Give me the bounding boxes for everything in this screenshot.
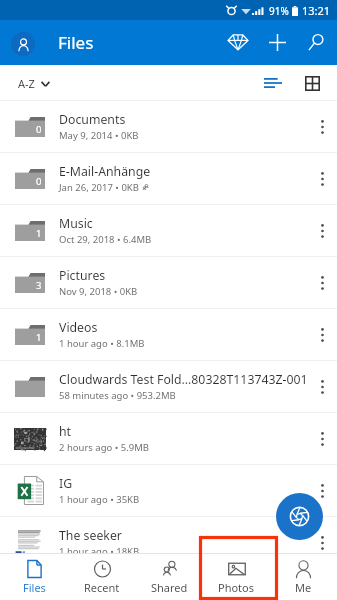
staticText: Cloudwards Test Fold…80328T113743Z-001 [59, 371, 308, 388]
button[interactable]: More options [309, 153, 337, 204]
button[interactable]: Me [270, 554, 337, 600]
button[interactable]: 3 [0, 257, 337, 308]
staticText: 1 [36, 331, 42, 344]
staticText: 1 [36, 227, 42, 240]
button[interactable]: IG [0, 465, 337, 516]
button[interactable]: Search [296, 23, 335, 62]
staticText: 1 hour ago • 18KB [59, 545, 140, 558]
staticText: 58 minutes ago • 953.2MB [59, 389, 176, 402]
staticText: Nov 9, 2018 • 0KB [59, 285, 138, 298]
staticText: 0 [36, 175, 42, 188]
staticText: The seeker [59, 527, 122, 544]
button[interactable]: A-Z [18, 76, 50, 91]
button[interactable]: Account [11, 32, 35, 56]
staticText: IG [59, 475, 73, 492]
staticText: 1 hour ago • 35KB [59, 493, 140, 506]
staticText: May 9, 2014 • 0KB [59, 129, 139, 142]
staticText: 91% [269, 4, 289, 18]
button[interactable]: Grid view [294, 65, 330, 101]
staticText: Pictures [59, 267, 106, 284]
button[interactable]: More options [309, 309, 337, 360]
staticText: A-Z [18, 76, 35, 91]
button[interactable]: Add [258, 23, 297, 62]
button[interactable]: More options [309, 257, 337, 308]
button[interactable]: Shared [136, 554, 203, 600]
staticText: 3 [36, 279, 42, 292]
staticText: Videos [59, 319, 98, 336]
button[interactable]: Premium [218, 23, 257, 62]
staticText: Shared [151, 580, 188, 595]
button[interactable]: More options [309, 101, 337, 152]
button[interactable]: 1 [0, 309, 337, 360]
button[interactable]: Cloudwards Test Fold…80328T113743Z-001 [0, 361, 337, 412]
staticText: Documents [59, 111, 126, 128]
button[interactable]: More options [309, 205, 337, 256]
button[interactable]: ht [0, 413, 337, 464]
button[interactable]: The seeker [0, 517, 337, 568]
staticText: Music [59, 215, 93, 232]
staticText: Files [23, 580, 46, 595]
button[interactable]: Scan document [276, 493, 323, 540]
button[interactable]: 0 [0, 101, 337, 152]
staticText: Recent [84, 580, 120, 595]
staticText: ht [59, 423, 72, 440]
button[interactable]: Photos [203, 554, 270, 600]
staticText: Oct 29, 2018 • 6.4MB [59, 233, 152, 246]
button[interactable]: 0 [0, 153, 337, 204]
button[interactable]: List view [255, 65, 291, 101]
staticText: E-Mail-Anhänge [59, 163, 151, 180]
staticText: Jan 26, 2017 • 0KB [59, 181, 139, 194]
button[interactable]: 1 [0, 205, 337, 256]
staticText: 0 [36, 123, 42, 136]
staticText: 2 hours ago • 5.9MB [59, 441, 149, 454]
staticText: Me [295, 580, 312, 595]
staticText: 13:21 [302, 3, 331, 18]
staticText: 1 hour ago • 8.1MB [59, 337, 145, 350]
button[interactable]: More options [309, 361, 337, 412]
button[interactable]: More options [309, 413, 337, 464]
button[interactable]: More options [309, 517, 337, 568]
staticText: Files [58, 31, 94, 54]
button[interactable]: Files [0, 554, 68, 600]
staticText: Photos [218, 580, 255, 595]
button[interactable]: More options [309, 465, 337, 516]
button[interactable]: Recent [68, 554, 136, 600]
